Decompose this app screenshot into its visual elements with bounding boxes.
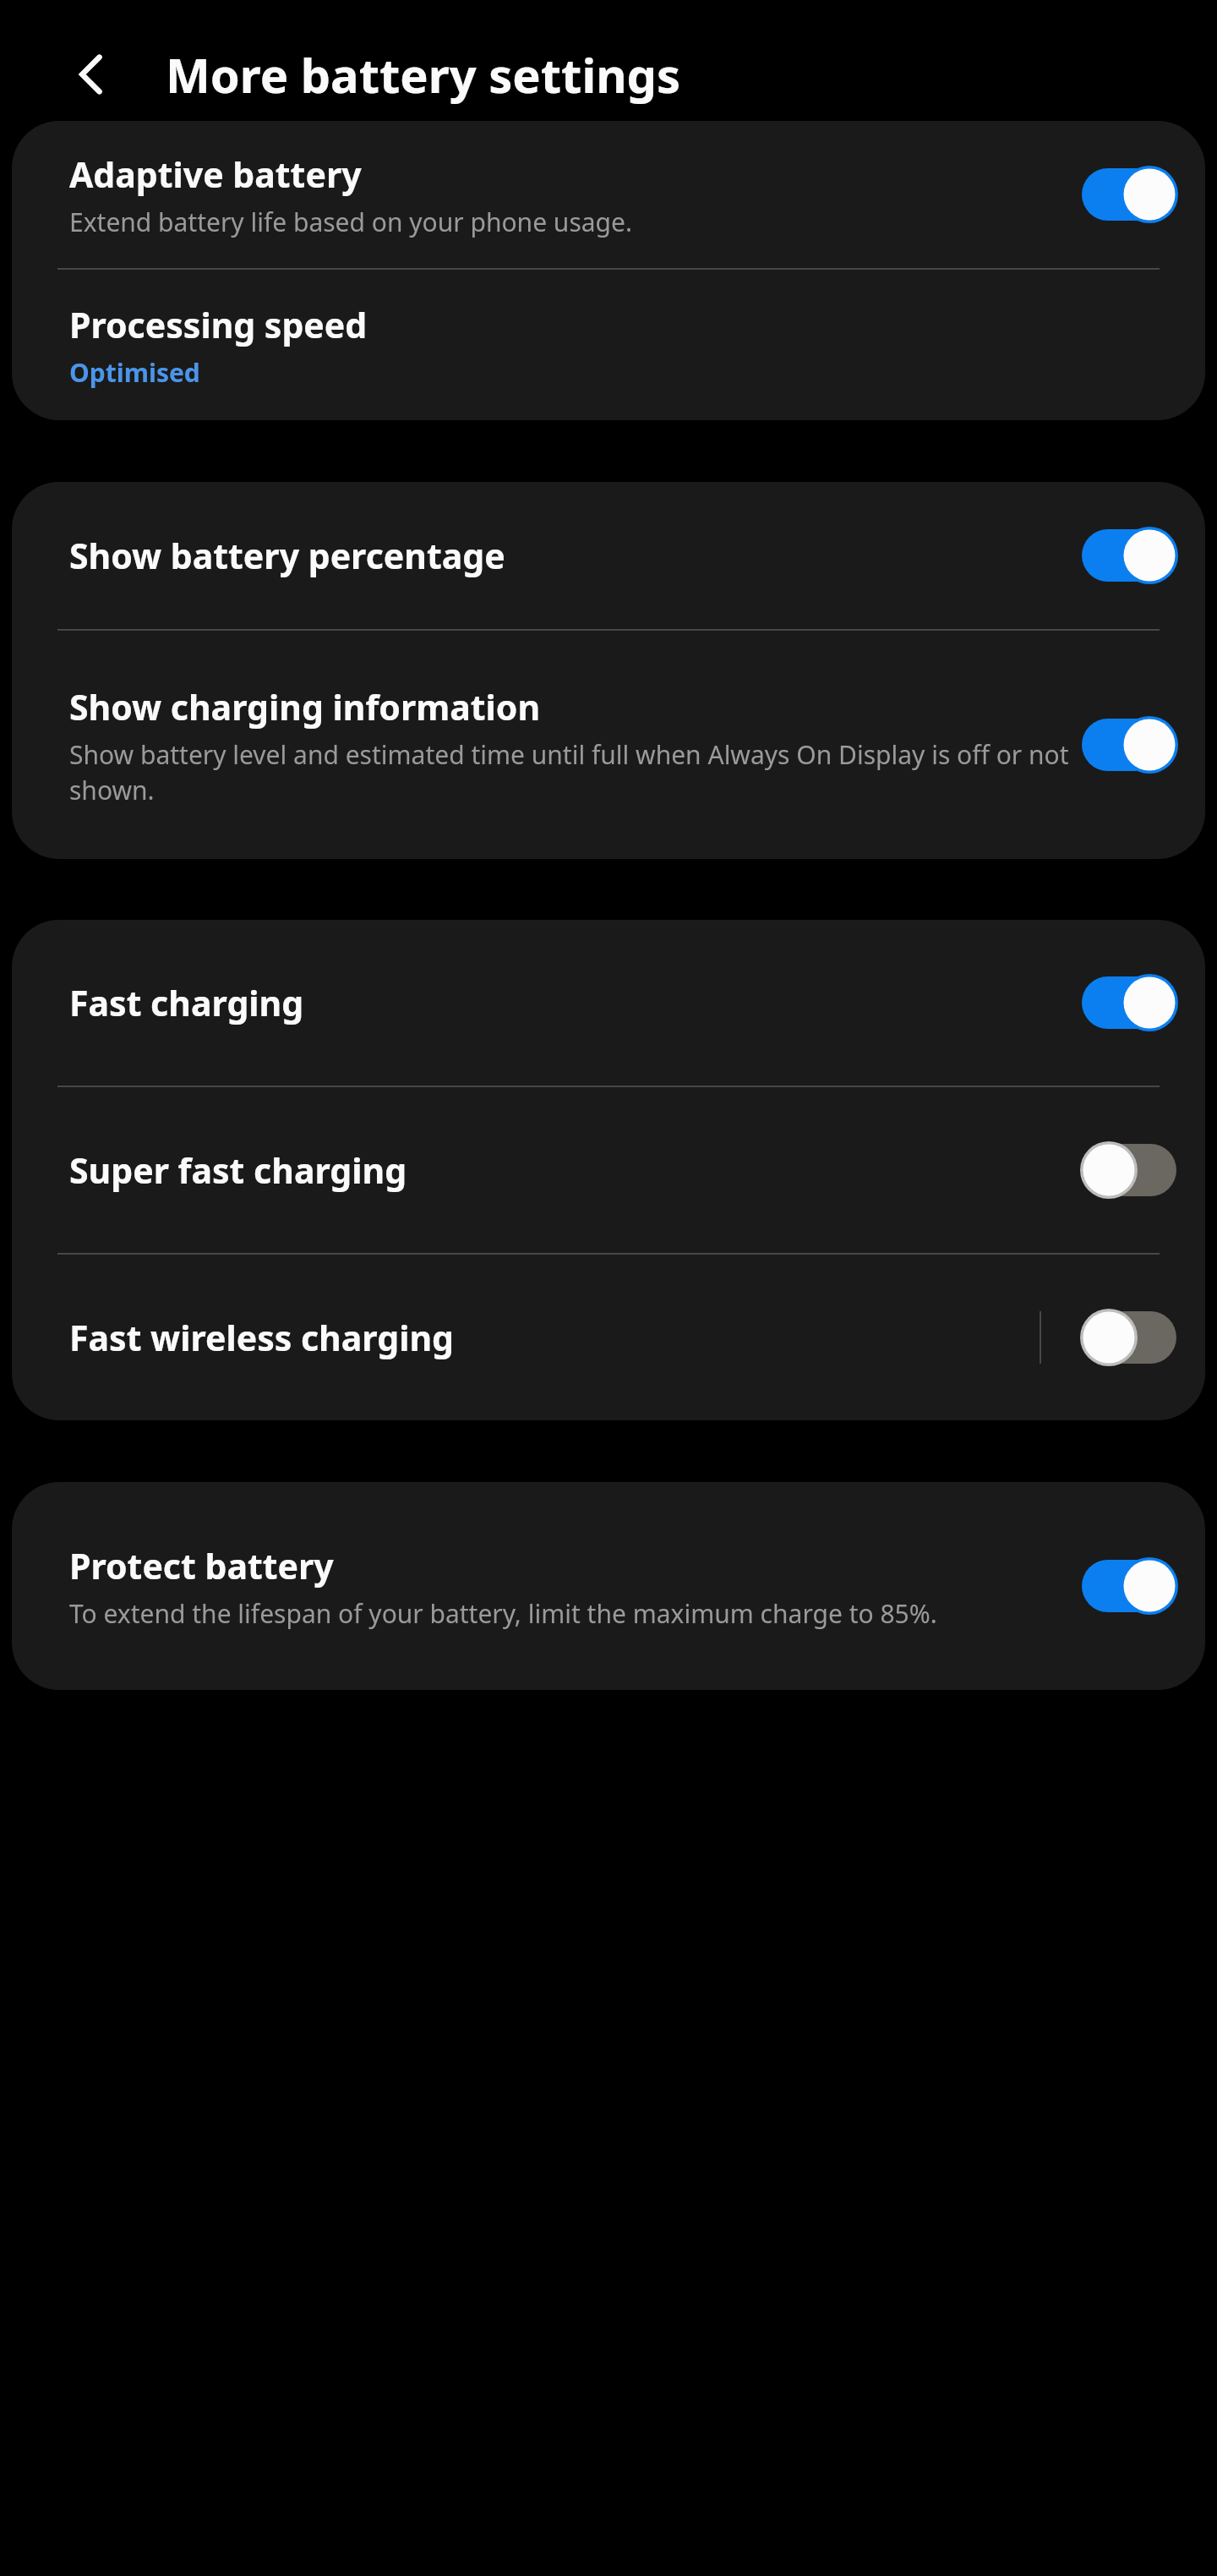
button[interactable]: Toggle off [1078,1307,1180,1368]
button[interactable]: Toggle on [1078,972,1180,1033]
staticText: Fast wireless charging [69,1314,454,1361]
button[interactable]: Super fast charging [12,1087,1205,1253]
button[interactable]: Toggle on [1078,164,1180,225]
staticText: Show battery percentage [69,532,505,579]
staticText: To extend the lifespan of your battery, … [69,1596,937,1631]
button[interactable]: Show battery percentage [12,482,1205,629]
button[interactable]: Toggle on [1078,714,1180,775]
button[interactable]: Fast wireless charging [12,1255,1205,1420]
button[interactable]: Toggle on [1078,525,1180,586]
staticText: Extend battery life based on your phone … [69,205,632,239]
button[interactable]: Protect battery [12,1482,1205,1690]
staticText: More battery settings [166,42,681,107]
button[interactable]: Processing speed [12,270,1205,420]
button[interactable]: Toggle off [1078,1140,1180,1200]
staticText: Processing speed [69,301,368,348]
button[interactable]: Fast charging [12,920,1205,1086]
button[interactable]: Back [51,34,132,115]
button[interactable]: Toggle on [1078,1556,1180,1616]
staticText: Adaptive battery [69,150,362,198]
button[interactable]: Show charging information [12,631,1205,859]
staticText: Fast charging [69,979,304,1026]
staticText: Show battery level and estimated time un… [69,737,1078,807]
staticText: Protect battery [69,1542,334,1589]
staticText: Show charging information [69,683,541,730]
staticText: Optimised [69,355,200,390]
button[interactable]: Adaptive battery [12,121,1205,268]
staticText: Super fast charging [69,1146,407,1194]
